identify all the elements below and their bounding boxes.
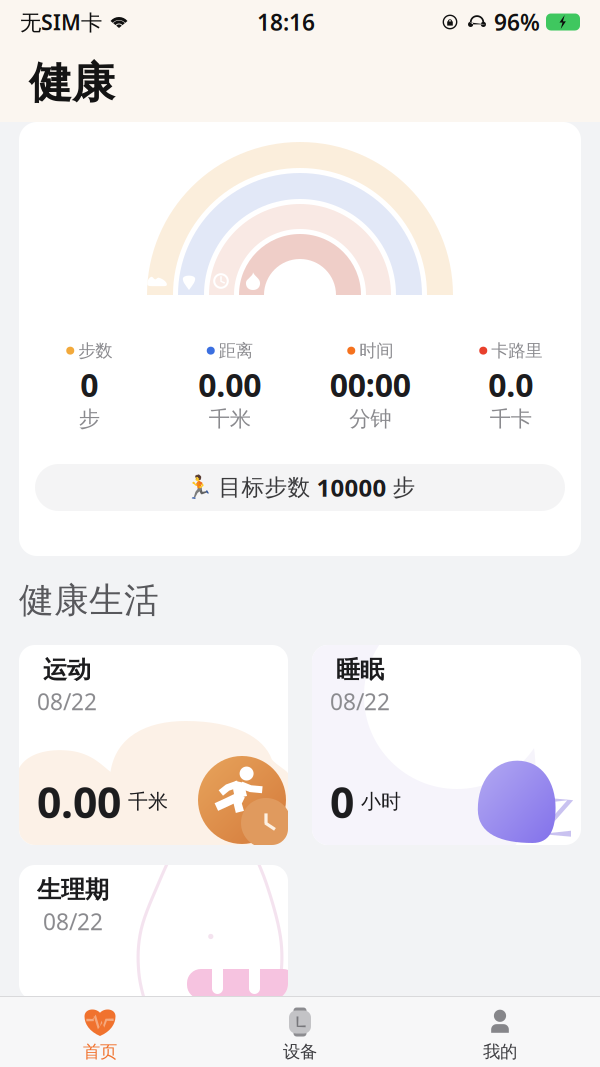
staticText: 时间 xyxy=(359,340,393,361)
staticText: 千米 xyxy=(209,406,251,432)
staticText: 目标步数 xyxy=(218,474,310,501)
staticText: 无SIM卡 xyxy=(20,8,102,36)
staticText: 睡眠 xyxy=(336,655,384,684)
staticText: 距离 xyxy=(219,340,253,361)
staticText: 千卡 xyxy=(490,406,532,432)
staticText: 0 xyxy=(330,773,354,830)
staticText: 运动 xyxy=(43,655,91,684)
staticText: 0 xyxy=(80,363,98,406)
staticText: 步数 xyxy=(78,340,112,361)
staticText: 08/22 xyxy=(43,906,103,937)
staticText: 0.00 xyxy=(37,773,121,830)
staticText: 首页 xyxy=(83,1041,117,1062)
staticText: 08/22 xyxy=(330,686,390,717)
staticText: 小时 xyxy=(361,789,401,814)
staticText: 0.0 xyxy=(488,363,533,406)
button[interactable]: 首页 xyxy=(0,996,200,1067)
staticText: 18:16 xyxy=(257,7,315,37)
staticText: 健康 xyxy=(29,57,115,109)
staticText: 健康生活 xyxy=(19,579,159,622)
staticText: 我的 xyxy=(483,1041,517,1062)
staticText: 分钟 xyxy=(349,406,391,432)
button[interactable]: 生理期 xyxy=(19,865,288,1000)
staticText: 96% xyxy=(494,7,540,37)
staticText: 00:00 xyxy=(330,363,411,406)
staticText: 步 xyxy=(79,406,100,432)
staticText: 生理期 xyxy=(37,875,109,904)
button[interactable]: 睡眠 xyxy=(312,645,581,845)
button[interactable]: 设备 xyxy=(200,996,400,1067)
staticText: 08/22 xyxy=(37,686,97,717)
staticText: 设备 xyxy=(283,1041,317,1062)
staticText: 0.00 xyxy=(198,363,261,406)
staticText: 步 xyxy=(392,474,415,501)
button[interactable]: 🏃 xyxy=(35,464,565,511)
staticText: 卡路里 xyxy=(491,340,542,361)
staticText: 10000 xyxy=(316,472,386,503)
staticText: 千米 xyxy=(128,789,168,814)
button[interactable]: 我的 xyxy=(400,996,600,1067)
button[interactable]: 运动 xyxy=(19,645,288,845)
staticText: 🏃 xyxy=(184,474,212,500)
